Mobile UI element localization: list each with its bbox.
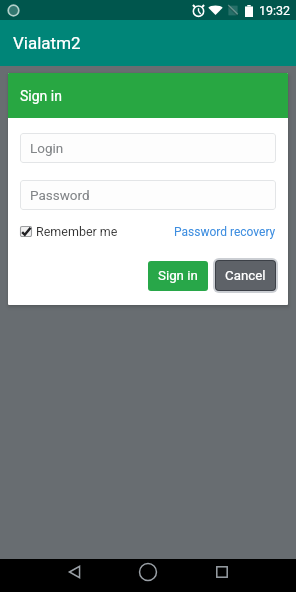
button[interactable]: Login [20, 133, 276, 163]
staticText: Login [30, 140, 64, 156]
button[interactable]: Home [125, 559, 171, 592]
staticText: Remember me [36, 224, 118, 239]
button[interactable]: Password [20, 180, 276, 210]
button[interactable]: Sign in [148, 261, 208, 291]
button[interactable]: Back [51, 559, 97, 592]
button[interactable]: Password recovery [174, 225, 276, 239]
button[interactable]: Remember me [20, 224, 118, 239]
staticText: Sign in [158, 268, 198, 284]
button[interactable]: Cancel [216, 261, 275, 290]
staticText: 19:32 [259, 3, 291, 18]
staticText: Vialatm2 [13, 33, 81, 53]
staticText: Sign in [20, 88, 62, 104]
staticText: Password [30, 187, 90, 203]
button[interactable]: Recents [199, 559, 245, 592]
staticText: Cancel [225, 268, 266, 284]
